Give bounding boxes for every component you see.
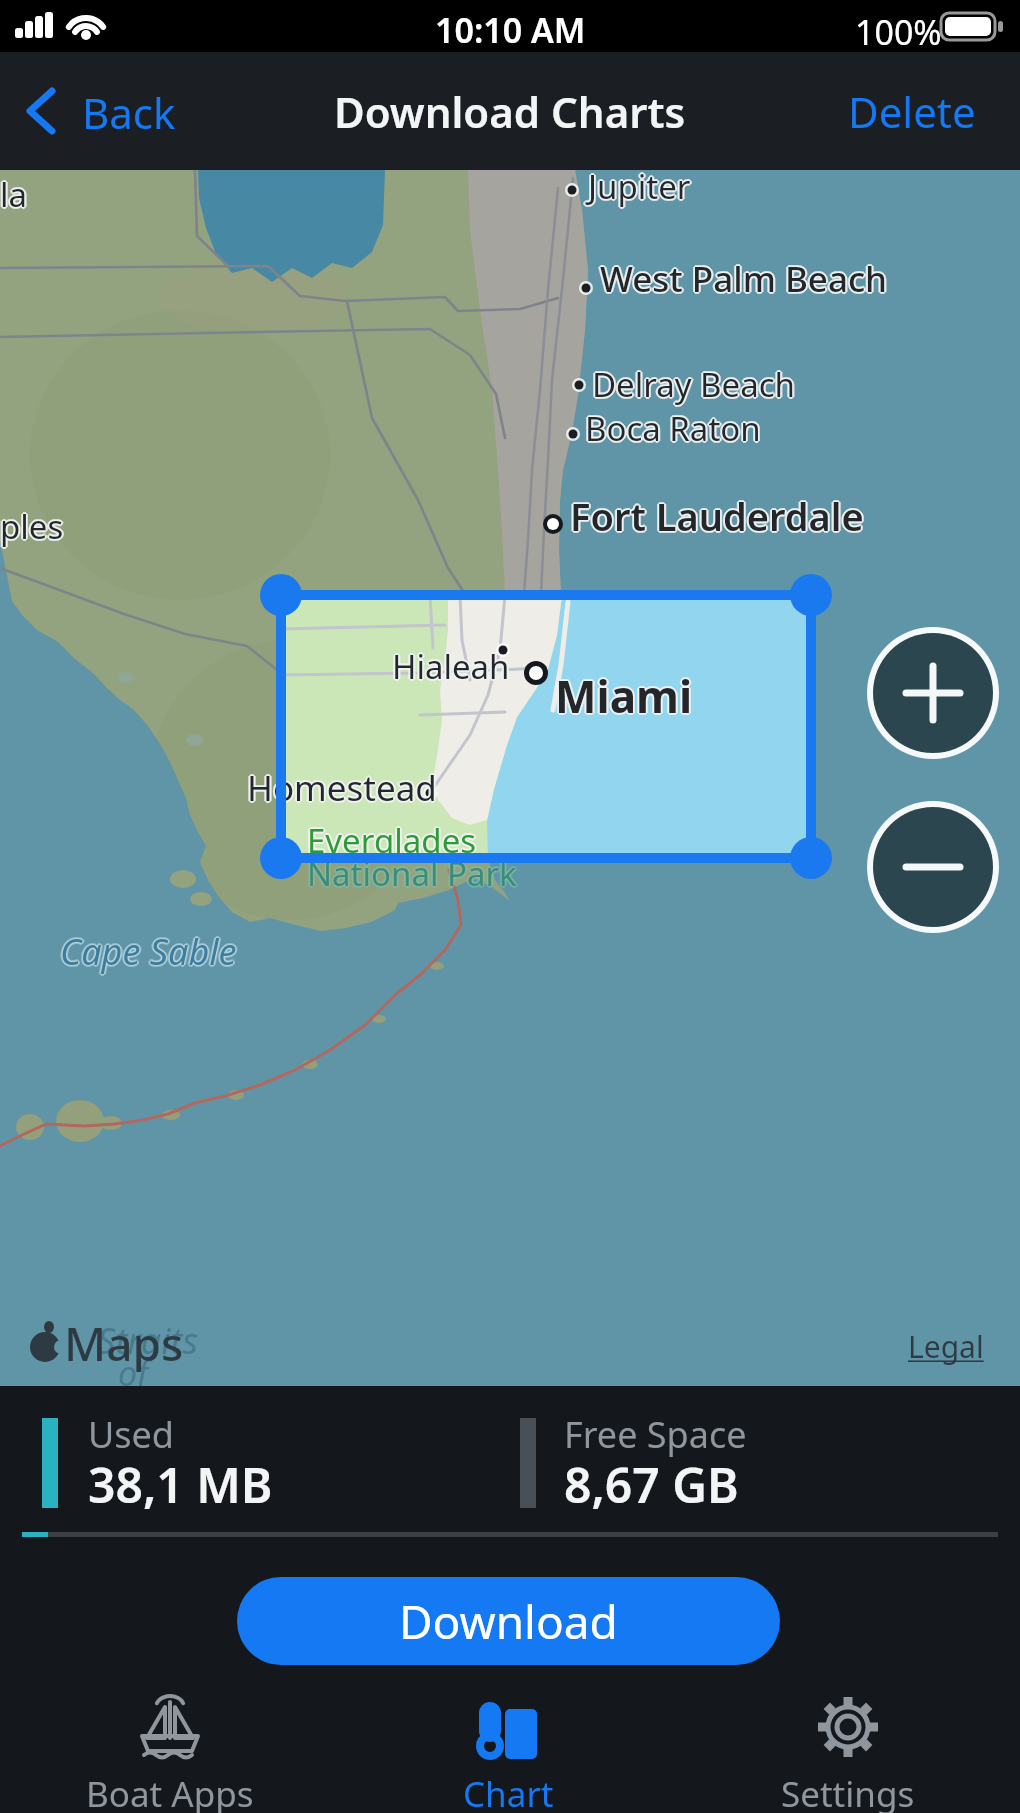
staticText: Jupiter bbox=[588, 170, 691, 207]
staticText: Hialeah bbox=[390, 644, 508, 689]
staticText: Fort Lauderdale bbox=[570, 490, 864, 542]
staticText: ples bbox=[0, 503, 63, 548]
staticText: Delray Beach bbox=[594, 362, 797, 407]
button[interactable]: Download bbox=[237, 1577, 780, 1665]
staticText: Legal bbox=[908, 1326, 984, 1367]
staticText: 38,1 MB bbox=[88, 1452, 273, 1517]
staticText: ples bbox=[0, 506, 64, 551]
staticText: of bbox=[118, 1350, 148, 1386]
staticText: Everglades bbox=[306, 819, 476, 864]
staticText: ples bbox=[0, 504, 62, 549]
staticText: Boca Raton bbox=[584, 405, 760, 450]
button[interactable]: Back bbox=[24, 76, 194, 146]
staticText: National Park bbox=[305, 851, 515, 896]
staticText: Homestead bbox=[249, 764, 439, 812]
staticText: Maps bbox=[64, 1312, 184, 1375]
staticText: Boca Raton bbox=[586, 405, 762, 450]
button[interactable] bbox=[867, 627, 999, 759]
staticText: Cape Sable bbox=[60, 925, 237, 974]
staticText: Hialeah bbox=[392, 642, 510, 687]
staticText: Cape Sable bbox=[60, 927, 237, 976]
staticText: Jupiter bbox=[587, 170, 690, 210]
staticText: Hialeah bbox=[392, 646, 510, 691]
staticText: Cape Sable bbox=[59, 926, 236, 975]
staticText: Delray Beach bbox=[591, 361, 794, 406]
staticText: West Palm Beach bbox=[598, 255, 886, 303]
staticText: Cape Sable bbox=[59, 928, 236, 977]
staticText: Boca Raton bbox=[584, 407, 760, 452]
staticText: Everglades bbox=[305, 818, 475, 863]
staticText: Homestead bbox=[245, 764, 435, 812]
staticText: National Park bbox=[306, 850, 516, 895]
staticText: Homestead bbox=[246, 765, 436, 813]
staticText: Straits bbox=[97, 1316, 198, 1365]
staticText: Boca Raton bbox=[585, 404, 761, 449]
staticText: Homestead bbox=[246, 763, 436, 811]
staticText: Boat Apps bbox=[86, 1770, 254, 1813]
staticText: la bbox=[1, 173, 29, 218]
staticText: Free Space bbox=[564, 1410, 747, 1459]
staticText: Miami bbox=[557, 666, 695, 726]
staticText: Download Charts bbox=[334, 83, 686, 140]
staticText: Fort Lauderdale bbox=[571, 489, 865, 541]
staticText: Miami bbox=[555, 666, 693, 726]
staticText: ples bbox=[1, 503, 65, 548]
button[interactable]: Delete bbox=[848, 83, 976, 140]
staticText: West Palm Beach bbox=[600, 255, 888, 303]
staticText: Delray Beach bbox=[591, 363, 794, 408]
staticText: Miami bbox=[553, 666, 691, 726]
button[interactable]: Settings bbox=[758, 1694, 938, 1813]
staticText: Boca Raton bbox=[586, 407, 762, 452]
staticText: la bbox=[1, 171, 29, 216]
staticText: National Park bbox=[307, 853, 517, 898]
staticText: ples bbox=[2, 504, 66, 549]
staticText: Hialeah bbox=[392, 644, 510, 689]
staticText: Download bbox=[399, 1590, 618, 1653]
staticText: Everglades bbox=[309, 818, 479, 863]
staticText: Jupiter bbox=[589, 170, 692, 210]
staticText: Delray Beach bbox=[593, 363, 796, 408]
staticText: Delray Beach bbox=[590, 362, 793, 407]
staticText: West Palm Beach bbox=[601, 254, 889, 302]
staticText: Jupiter bbox=[587, 170, 690, 208]
staticText: Fort Lauderdale bbox=[570, 488, 864, 540]
staticText: ples bbox=[0, 505, 63, 550]
staticText: Boca Raton bbox=[585, 408, 761, 453]
staticText: Jupiter bbox=[588, 170, 691, 209]
staticText: ples bbox=[0, 504, 64, 549]
staticText: 100% bbox=[855, 9, 942, 55]
staticText: Homestead bbox=[247, 764, 437, 812]
staticText: Delete bbox=[848, 83, 976, 140]
staticText: Jupiter bbox=[586, 170, 689, 209]
staticText: la bbox=[0, 170, 28, 215]
button[interactable]: Boat Apps bbox=[80, 1694, 260, 1813]
staticText: Cape Sable bbox=[58, 927, 235, 976]
staticText: Boca Raton bbox=[583, 406, 759, 451]
staticText: Delray Beach bbox=[592, 360, 795, 405]
staticText: Hialeah bbox=[394, 644, 512, 689]
staticText: Hialeah bbox=[393, 645, 511, 690]
staticText: National Park bbox=[308, 850, 518, 895]
staticText: la bbox=[0, 172, 26, 217]
staticText: Miami bbox=[556, 667, 694, 727]
staticText: Jupiter bbox=[590, 170, 693, 209]
staticText: Hialeah bbox=[391, 643, 509, 688]
staticText: Miami bbox=[555, 668, 693, 728]
staticText: Everglades bbox=[307, 820, 477, 865]
staticText: Homestead bbox=[248, 763, 438, 811]
button[interactable] bbox=[867, 801, 999, 933]
staticText: Delray Beach bbox=[592, 362, 795, 407]
staticText: Jupiter bbox=[588, 170, 691, 211]
staticText: Everglades bbox=[308, 819, 478, 864]
staticText: Fort Lauderdale bbox=[569, 491, 863, 543]
staticText: West Palm Beach bbox=[599, 256, 887, 304]
staticText: ples bbox=[1, 505, 65, 550]
staticText: Chart bbox=[463, 1770, 554, 1813]
button[interactable]: Legal bbox=[908, 1326, 984, 1367]
button[interactable]: Chart bbox=[418, 1694, 598, 1813]
staticText: la bbox=[0, 171, 27, 216]
staticText: Fort Lauderdale bbox=[571, 491, 865, 543]
staticText: West Palm Beach bbox=[601, 256, 889, 304]
staticText: West Palm Beach bbox=[599, 254, 887, 302]
staticText: Boca Raton bbox=[587, 406, 763, 451]
